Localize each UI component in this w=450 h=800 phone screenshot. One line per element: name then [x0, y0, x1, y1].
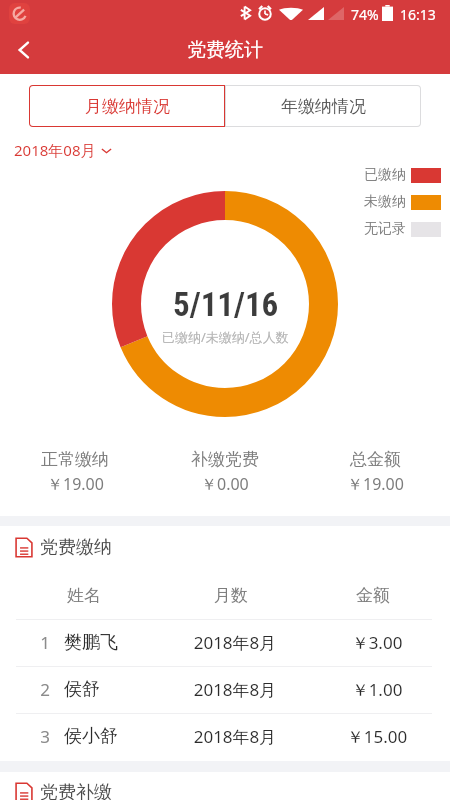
staticText: 2018年8月	[164, 631, 306, 654]
staticText: 74%	[351, 5, 379, 24]
staticText: 樊鹏飞	[64, 631, 164, 654]
staticText: 党费补缴	[40, 781, 112, 800]
button[interactable]: Back	[0, 26, 48, 74]
button[interactable]: 月缴纳情况	[29, 85, 225, 127]
staticText: 无记录	[364, 220, 407, 238]
staticText: 月缴纳情况	[85, 96, 170, 117]
button[interactable]: 党费补缴	[15, 780, 112, 800]
staticText: 2	[30, 678, 60, 701]
staticText: 5/11/16	[173, 285, 279, 324]
staticText: ￥15.00	[306, 725, 448, 748]
staticText: ￥0.00	[201, 473, 249, 495]
staticText: ￥19.00	[347, 473, 404, 495]
staticText: 侯舒	[64, 678, 164, 701]
staticText: 已缴纳	[364, 166, 407, 184]
staticText: 未缴纳	[364, 193, 407, 211]
staticText: 姓名	[64, 585, 104, 606]
staticText: 2018年8月	[164, 678, 306, 701]
button[interactable]: 年缴纳情况	[225, 85, 421, 127]
button[interactable]: 2018年08月	[14, 140, 112, 160]
staticText: 已缴纳/未缴纳/总人数	[162, 328, 289, 346]
staticText: 3	[30, 725, 60, 748]
staticText: 补缴党费	[191, 449, 259, 470]
button[interactable]: 3	[0, 713, 450, 760]
staticText: 年缴纳情况	[281, 96, 366, 117]
staticText: 正常缴纳	[41, 449, 109, 470]
staticText: 金额	[302, 585, 444, 606]
button[interactable]: 1	[0, 619, 450, 666]
staticText: ￥1.00	[306, 678, 448, 701]
button[interactable]: 2	[0, 666, 450, 713]
staticText: 2018年08月	[14, 140, 96, 160]
staticText: 侯小舒	[64, 725, 164, 748]
button[interactable]: 党费缴纳	[15, 535, 112, 559]
staticText: 月数	[160, 585, 302, 606]
staticText: 2018年8月	[164, 725, 306, 748]
staticText: 总金额	[350, 449, 401, 470]
staticText: 党费缴纳	[40, 536, 112, 559]
staticText: ￥19.00	[47, 473, 104, 495]
staticText: 16:13	[400, 5, 436, 24]
staticText: ￥3.00	[306, 631, 448, 654]
staticText: 党费统计	[187, 38, 263, 62]
staticText: 1	[30, 631, 60, 654]
